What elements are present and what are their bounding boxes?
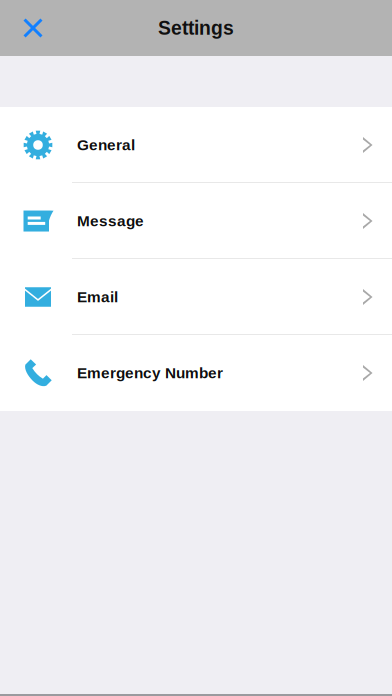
staticText: Emergency Number [77, 364, 223, 381]
button[interactable]: Emergency Number [0, 335, 392, 411]
staticText: Email [77, 288, 118, 305]
button[interactable]: Message [0, 183, 392, 259]
staticText: Message [77, 212, 144, 229]
staticText: General [77, 136, 135, 153]
button[interactable]: Close [11, 6, 55, 50]
button[interactable]: General [0, 107, 392, 183]
button[interactable]: Email [0, 259, 392, 335]
staticText: Settings [158, 17, 234, 39]
